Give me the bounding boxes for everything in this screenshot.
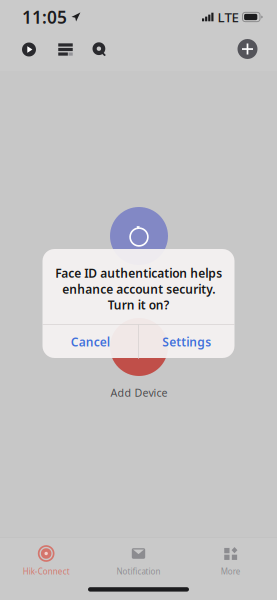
staticText: Notification: [116, 566, 160, 577]
button[interactable]: Add device: [231, 33, 263, 65]
staticText: Add Device: [110, 385, 167, 400]
button[interactable]: Add Device: [99, 318, 179, 398]
button[interactable]: Notification: [92, 538, 185, 600]
button[interactable]: Settings: [139, 325, 234, 359]
staticText: Face ID authentication helps enhance acc…: [55, 265, 222, 313]
button[interactable]: Live view: [14, 34, 44, 64]
button[interactable]: Search: [84, 34, 114, 64]
staticText: More: [221, 566, 241, 577]
button[interactable]: Cancel: [42, 325, 138, 359]
button[interactable]: Device list: [50, 34, 80, 64]
staticText: LTE: [217, 8, 238, 26]
staticText: Cancel: [71, 334, 110, 350]
staticText: Settings: [162, 334, 211, 350]
staticText: Hik-Connect: [23, 566, 70, 577]
staticText: 11:05: [22, 5, 67, 28]
button[interactable]: More: [185, 538, 277, 600]
button[interactable]: Hik-Connect: [0, 538, 92, 600]
